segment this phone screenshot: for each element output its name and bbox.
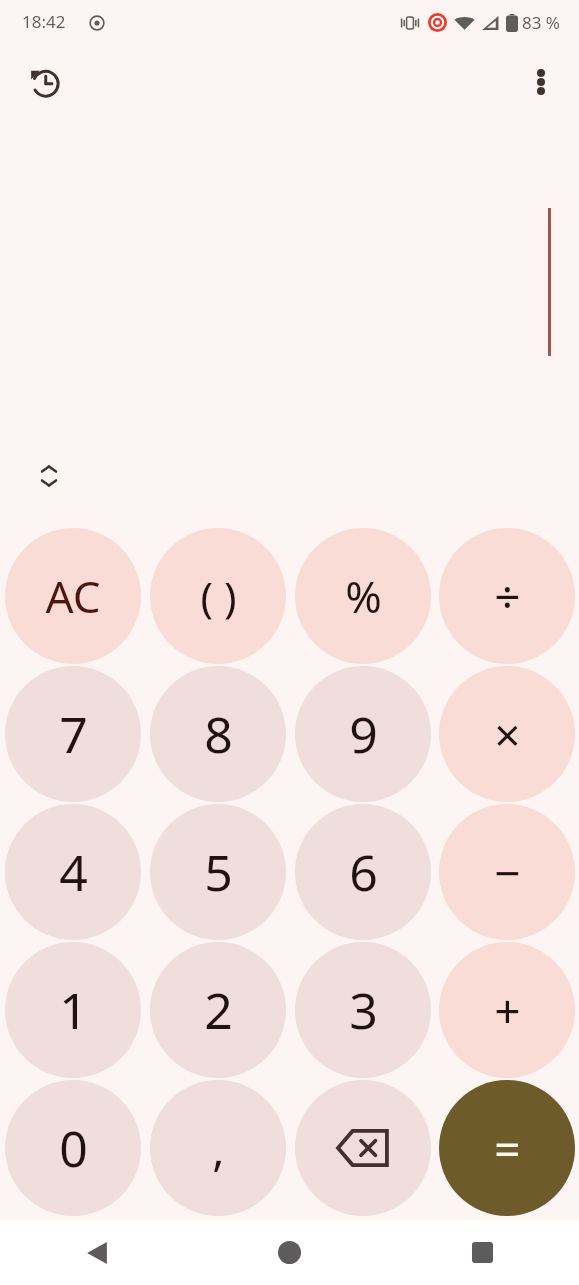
staticText: 4 [59, 838, 88, 906]
staticText: 1 [59, 976, 88, 1044]
button[interactable]: 5 [150, 804, 286, 940]
button[interactable]: + [439, 942, 575, 1078]
button[interactable]: Backspace [295, 1080, 431, 1216]
button[interactable]: , [150, 1080, 286, 1216]
button[interactable]: 2 [150, 942, 286, 1078]
button[interactable]: 3 [295, 942, 431, 1078]
button[interactable]: ( ) [150, 528, 286, 664]
button[interactable]: More options [513, 54, 569, 110]
staticText: , [212, 1117, 225, 1180]
staticText: AC [45, 566, 101, 626]
button[interactable]: × [439, 666, 575, 802]
staticText: 7 [59, 700, 88, 768]
staticText: 83 % [522, 11, 560, 34]
button[interactable]: ÷ [439, 528, 575, 664]
staticText: 5 [204, 838, 233, 906]
button[interactable]: Expand [20, 447, 78, 505]
button[interactable]: 9 [295, 666, 431, 802]
button[interactable]: % [295, 528, 431, 664]
staticText: 6 [349, 838, 378, 906]
button[interactable]: 4 [5, 804, 141, 940]
button[interactable]: = [439, 1080, 575, 1216]
button[interactable]: Back [0, 1220, 193, 1285]
staticText: % [345, 566, 382, 626]
staticText: × [494, 703, 521, 766]
button[interactable]: History [16, 54, 72, 110]
staticText: 9 [349, 700, 378, 768]
button[interactable]: 8 [150, 666, 286, 802]
button[interactable]: AC [5, 528, 141, 664]
staticText: 0 [59, 1114, 88, 1182]
button[interactable]: 7 [5, 666, 141, 802]
staticText: ( ) [200, 568, 237, 625]
staticText: 2 [204, 976, 233, 1044]
button[interactable]: − [439, 804, 575, 940]
button[interactable]: 1 [5, 942, 141, 1078]
staticText: − [494, 841, 521, 904]
staticText: = [494, 1117, 521, 1180]
staticText: 18:42 [22, 10, 66, 33]
button[interactable]: 6 [295, 804, 431, 940]
button[interactable]: Home [193, 1220, 386, 1285]
staticText: ÷ [494, 565, 521, 628]
button[interactable]: Recent apps [386, 1220, 579, 1285]
button[interactable]: 0 [5, 1080, 141, 1216]
staticText: + [494, 979, 521, 1042]
staticText: 3 [349, 976, 378, 1044]
staticText: 8 [204, 700, 233, 768]
